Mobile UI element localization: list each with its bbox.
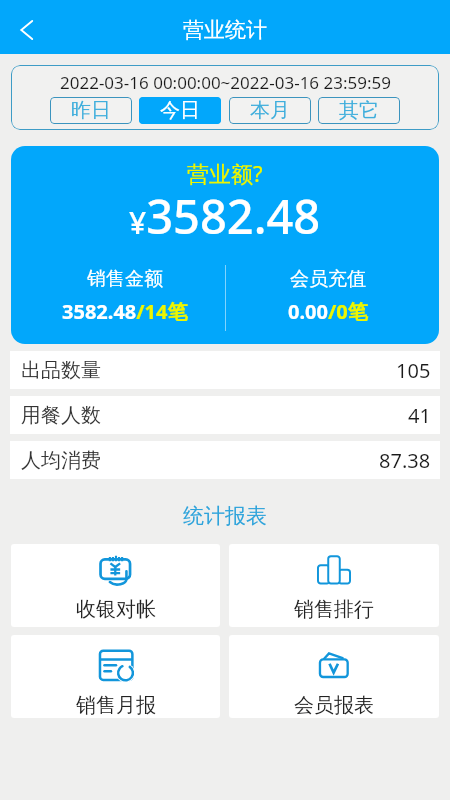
staticText: 87.38	[379, 447, 431, 474]
staticText: 会员充值	[290, 267, 366, 291]
staticText: ¥3582.48	[129, 184, 321, 248]
button[interactable]: 销售排行	[229, 544, 439, 627]
staticText: 统计报表	[0, 503, 450, 529]
staticText: 销售排行	[294, 597, 374, 622]
button[interactable]: 用餐人数	[10, 396, 440, 434]
staticText: 销售月报	[76, 693, 156, 718]
staticText: 其它	[339, 98, 379, 123]
staticText: 人均消费	[21, 448, 101, 473]
staticText: 用餐人数	[21, 403, 101, 428]
staticText: 营业额?	[187, 158, 263, 188]
staticText: 105	[396, 357, 431, 384]
button[interactable]: 出品数量	[10, 351, 440, 389]
button[interactable]: Back	[0, 0, 48, 54]
staticText: 会员报表	[294, 693, 374, 718]
button[interactable]: 人均消费	[10, 441, 440, 479]
button[interactable]: 会员报表	[229, 635, 439, 718]
staticText: 销售金额	[87, 267, 163, 291]
button[interactable]: 其它	[318, 97, 400, 124]
button[interactable]: 收银对帐	[11, 544, 220, 627]
staticText: 本月	[250, 98, 290, 123]
button[interactable]: 今日	[139, 97, 221, 124]
button[interactable]: 本月	[229, 97, 311, 124]
button[interactable]: 销售月报	[11, 635, 220, 718]
staticText: 营业统计	[183, 17, 267, 43]
staticText: 今日	[160, 98, 200, 123]
staticText: 出品数量	[21, 358, 101, 383]
button[interactable]: 昨日	[50, 97, 132, 124]
button[interactable]: 营业额?	[11, 146, 439, 344]
staticText: 3582.48/14笔	[62, 298, 188, 325]
staticText: 0.00/0笔	[288, 298, 368, 325]
staticText: 收银对帐	[76, 597, 156, 622]
staticText: 昨日	[71, 98, 111, 123]
staticText: 41	[408, 402, 431, 429]
staticText: 2022-03-16 00:00:00~2022-03-16 23:59:59	[60, 71, 391, 94]
